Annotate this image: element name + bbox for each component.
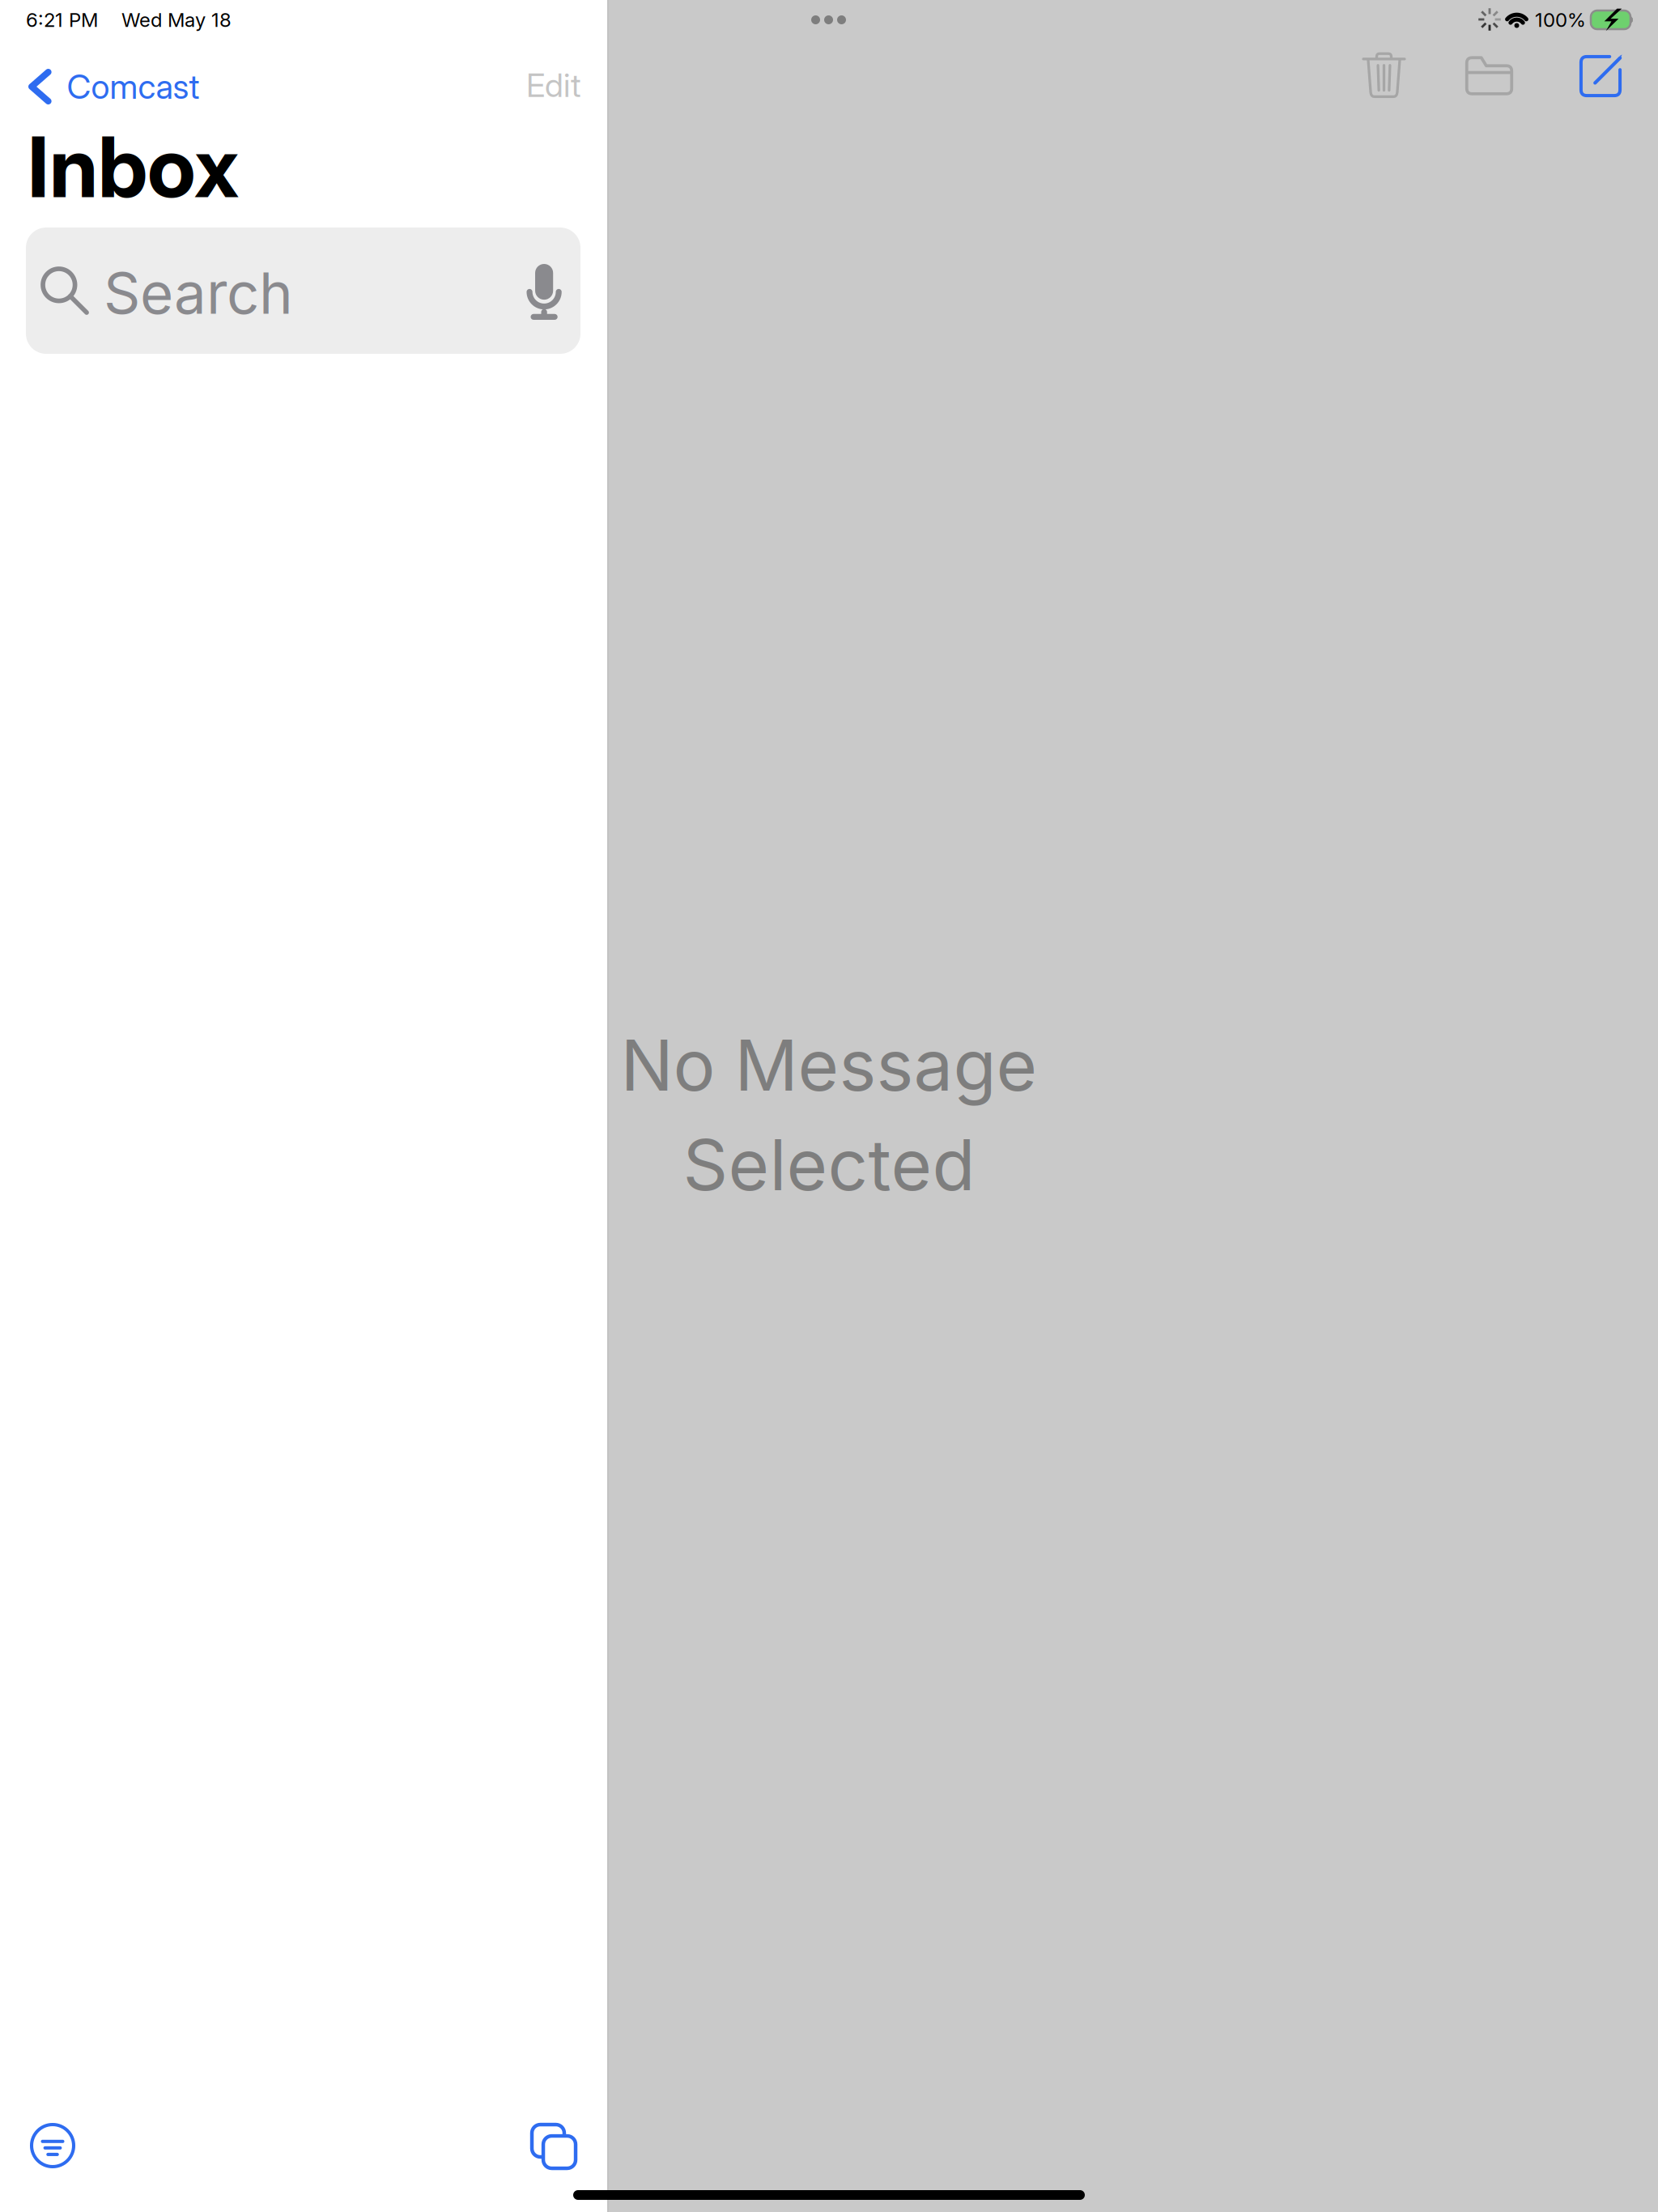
button[interactable]: Move to folder — [1465, 53, 1514, 96]
staticText: No Message — [621, 1023, 1037, 1108]
staticText: Inbox — [28, 117, 239, 217]
button[interactable]: Filter — [32, 2125, 74, 2167]
button[interactable]: Show message list in new window — [526, 2119, 570, 2163]
button[interactable]: Delete — [1363, 50, 1405, 99]
staticText: Comcast — [67, 66, 200, 107]
staticText: 6:21 PM — [26, 8, 98, 32]
staticText: Wed May 18 — [121, 8, 232, 32]
staticText: Search — [104, 258, 293, 328]
button[interactable]: Search — [26, 228, 580, 354]
button[interactable]: Comcast — [23, 62, 204, 112]
staticText: Edit — [526, 66, 581, 105]
button[interactable]: Edit — [521, 61, 586, 110]
button[interactable]: Compose — [1578, 53, 1623, 99]
staticText: Selected — [683, 1122, 975, 1207]
staticText: 100% — [1535, 8, 1586, 32]
